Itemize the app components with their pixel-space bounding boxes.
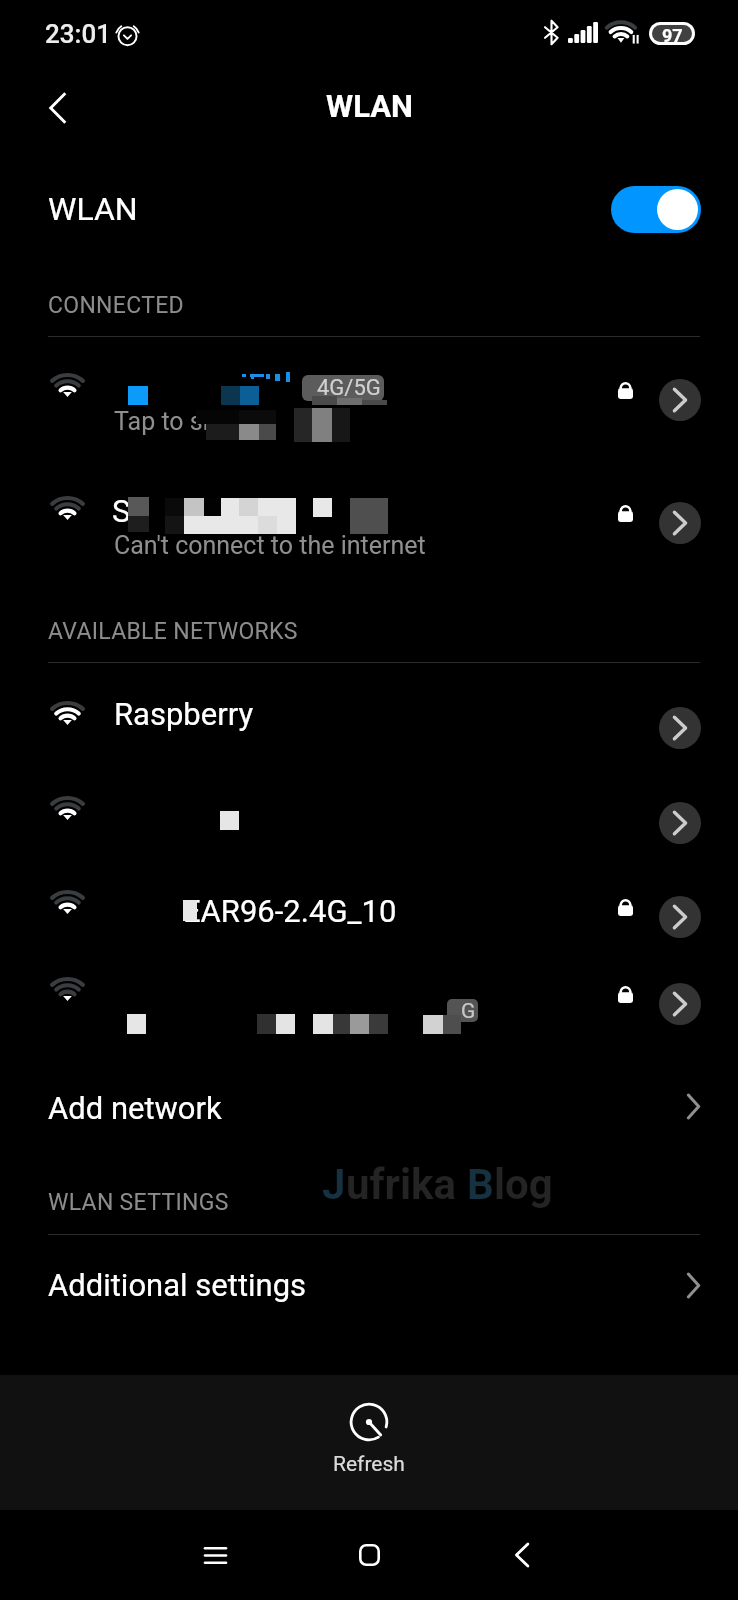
staticText: Can't connect to the internet: [114, 531, 426, 560]
staticText: S: [112, 493, 131, 529]
button[interactable]: [0, 360, 738, 442]
staticText: WLAN: [48, 190, 138, 228]
button[interactable]: WLAN: [0, 164, 738, 254]
button[interactable]: Refresh: [0, 1375, 738, 1510]
staticText: J: [322, 1160, 346, 1209]
staticText: EAR96-2.4G_10: [183, 893, 397, 929]
button[interactable]: [0, 964, 738, 1046]
button[interactable]: [0, 483, 738, 565]
button[interactable]: Recent apps: [181, 1521, 249, 1589]
button[interactable]: Network details: [659, 802, 701, 844]
button[interactable]: Network details: [659, 983, 701, 1025]
staticText: AVAILABLE NETWORKS: [48, 618, 298, 645]
button[interactable]: Navigate up: [28, 79, 86, 137]
button[interactable]: Network details: [659, 707, 701, 749]
staticText: WLAN: [326, 88, 413, 124]
staticText: Raspberry: [114, 696, 254, 732]
staticText: Additional settings: [48, 1267, 307, 1303]
staticText: Tap to share password: [114, 407, 367, 436]
staticText: log: [494, 1160, 553, 1209]
staticText: 4G/5G: [317, 375, 381, 401]
staticText: Add network: [48, 1090, 222, 1126]
button[interactable]: [0, 877, 738, 959]
button[interactable]: Back: [488, 1521, 556, 1589]
button[interactable]: Network details: [659, 379, 701, 421]
button[interactable]: [0, 1062, 738, 1146]
button[interactable]: Network details: [659, 896, 701, 938]
staticText: G: [461, 999, 476, 1022]
button[interactable]: [0, 1239, 738, 1323]
button[interactable]: [0, 783, 738, 865]
staticText: B: [467, 1160, 494, 1209]
button[interactable]: [0, 688, 738, 770]
staticText: WLAN SETTINGS: [48, 1189, 229, 1216]
staticText: ufrika: [346, 1160, 467, 1209]
staticText: CONNECTED: [48, 292, 184, 319]
button[interactable]: Home: [335, 1521, 403, 1589]
staticText: Refresh: [333, 1452, 405, 1477]
staticText: 97: [662, 25, 683, 42]
button[interactable]: Network details: [659, 502, 701, 544]
staticText: 23:01: [45, 19, 111, 49]
